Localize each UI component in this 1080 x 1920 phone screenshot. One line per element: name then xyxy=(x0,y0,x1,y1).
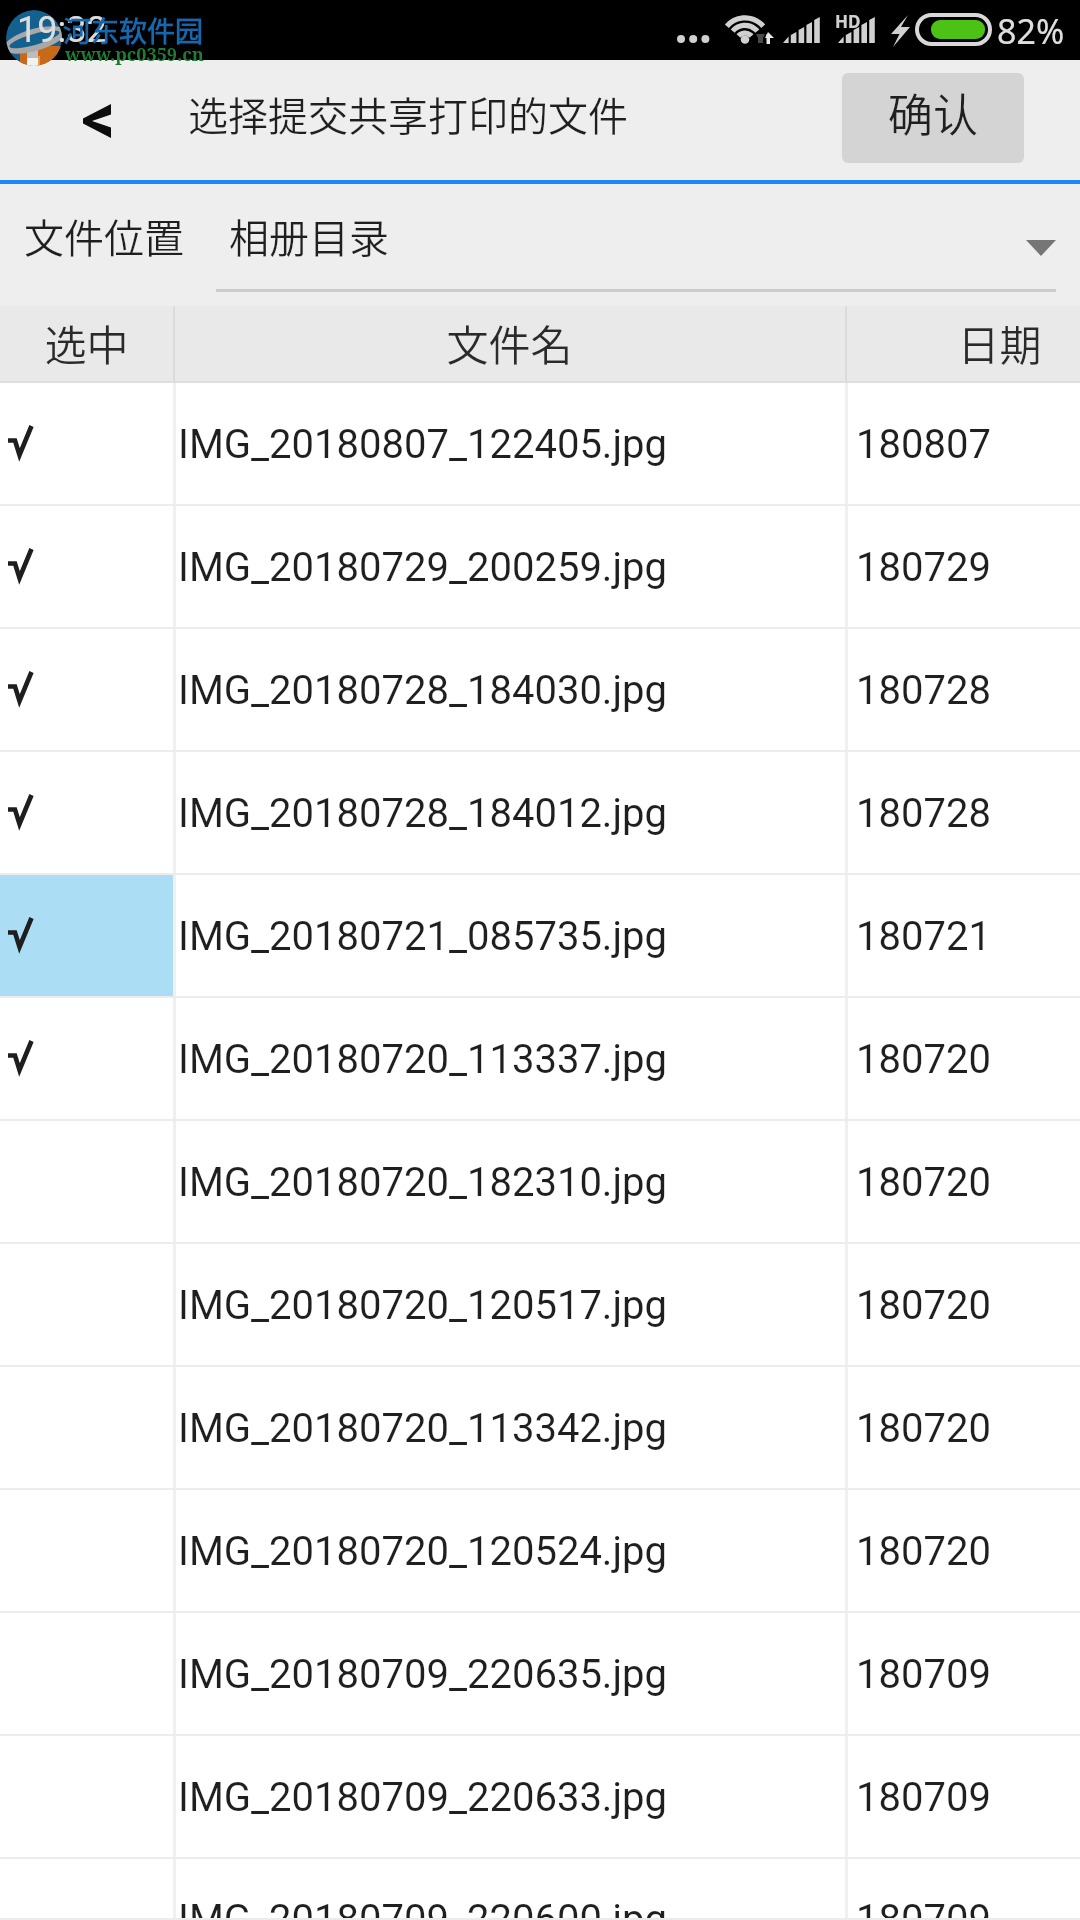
button[interactable]: IMG_20180728_184030.jpg xyxy=(0,629,1080,752)
button[interactable]: 相册目录 xyxy=(216,184,1056,306)
staticText: IMG_20180720_182310.jpg xyxy=(178,1159,667,1206)
staticText: IMG_20180728_184030.jpg xyxy=(178,667,667,714)
staticText: IMG_20180720_113337.jpg xyxy=(178,1036,667,1083)
staticText: www.pc0359.cn xyxy=(65,42,204,67)
staticText: 19:32 xyxy=(17,9,107,51)
button[interactable]: IMG_20180709_220635.jpg xyxy=(0,1613,1080,1736)
staticText: 文件位置 xyxy=(24,207,184,265)
staticText: HD xyxy=(835,10,861,33)
staticText: IMG_20180720_120524.jpg xyxy=(178,1528,667,1575)
staticText: 180729 xyxy=(856,544,991,591)
staticText: IMG_20180807_122405.jpg xyxy=(178,421,667,468)
staticText: 180728 xyxy=(856,790,991,837)
staticText: 180720 xyxy=(856,1528,991,1575)
button[interactable]: IMG_20180729_200259.jpg xyxy=(0,506,1080,629)
button[interactable]: IMG_20180720_182310.jpg xyxy=(0,1121,1080,1244)
button[interactable]: IMG_20180720_120517.jpg xyxy=(0,1244,1080,1367)
button[interactable]: IMG_20180720_120524.jpg xyxy=(0,1490,1080,1613)
staticText: 180720 xyxy=(856,1036,991,1083)
staticText: IMG_20180709_220633.jpg xyxy=(178,1774,667,1821)
staticText: 日期 xyxy=(957,312,1042,373)
staticText: 相册目录 xyxy=(229,207,389,265)
staticText: IMG_20180729_200259.jpg xyxy=(178,544,667,591)
staticText: IMG_20180720_113342.jpg xyxy=(178,1405,667,1452)
staticText: 180721 xyxy=(856,913,991,960)
staticText: 180720 xyxy=(856,1282,991,1329)
button[interactable]: IMG_20180728_184012.jpg xyxy=(0,752,1080,875)
staticText: IMG_20180721_085735.jpg xyxy=(178,913,667,960)
staticText: IMG_20180709_220635.jpg xyxy=(178,1651,667,1698)
staticText: IMG_20180709_220600.jpg xyxy=(178,1896,667,1920)
staticText: 82% xyxy=(997,8,1065,54)
button[interactable]: IMG_20180709_220600.jpg xyxy=(0,1859,1080,1920)
button[interactable]: IMG_20180720_113337.jpg xyxy=(0,998,1080,1121)
staticText: 180720 xyxy=(856,1405,991,1452)
staticText: IMG_20180728_184012.jpg xyxy=(178,790,667,837)
button[interactable]: Back xyxy=(60,60,136,180)
staticText: 180709 xyxy=(856,1651,991,1698)
staticText: 180728 xyxy=(856,667,991,714)
staticText: 180720 xyxy=(856,1159,991,1206)
staticText: 180709 xyxy=(856,1774,991,1821)
button[interactable]: IMG_20180709_220633.jpg xyxy=(0,1736,1080,1859)
button[interactable]: IMG_20180807_122405.jpg xyxy=(0,383,1080,506)
button[interactable]: IMG_20180720_113342.jpg xyxy=(0,1367,1080,1490)
staticText: 180709 xyxy=(856,1896,991,1920)
button[interactable]: IMG_20180721_085735.jpg xyxy=(0,875,1080,998)
staticText: 确认 xyxy=(888,80,979,145)
staticText: 选中 xyxy=(44,312,129,373)
staticText: 河东软件园 xyxy=(63,10,204,51)
staticText: 文件名 xyxy=(446,312,573,373)
staticText: 选择提交共享打印的文件 xyxy=(188,85,628,143)
staticText: IMG_20180720_120517.jpg xyxy=(178,1282,667,1329)
button[interactable]: 确认 xyxy=(842,73,1024,163)
staticText: 180807 xyxy=(856,421,991,468)
